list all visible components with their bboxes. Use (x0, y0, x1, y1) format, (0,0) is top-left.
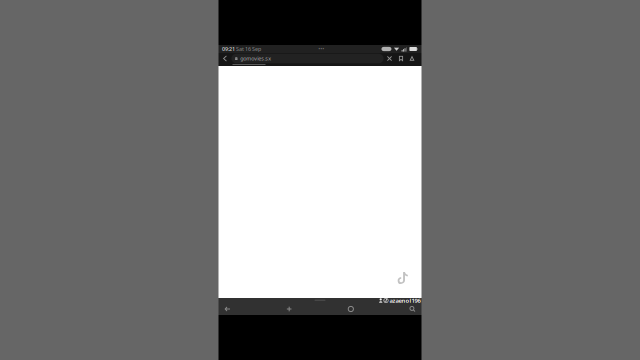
staticText: ••• (318, 45, 324, 53)
button[interactable]: Home (342, 300, 359, 317)
button[interactable]: Back (219, 300, 236, 317)
staticText: azaenol196 (389, 296, 420, 304)
staticText: gomovies.sx (240, 55, 271, 62)
button[interactable]: New tab (281, 300, 298, 317)
button[interactable]: Bookmarks (395, 52, 406, 64)
button[interactable]: Back (218, 52, 231, 64)
staticText: Sat 16 Sep (235, 45, 261, 53)
button[interactable]: Search (404, 300, 421, 317)
button[interactable]: Share (406, 52, 417, 64)
staticText: 09:21 (222, 45, 235, 53)
button[interactable]: Stop loading (383, 52, 395, 64)
